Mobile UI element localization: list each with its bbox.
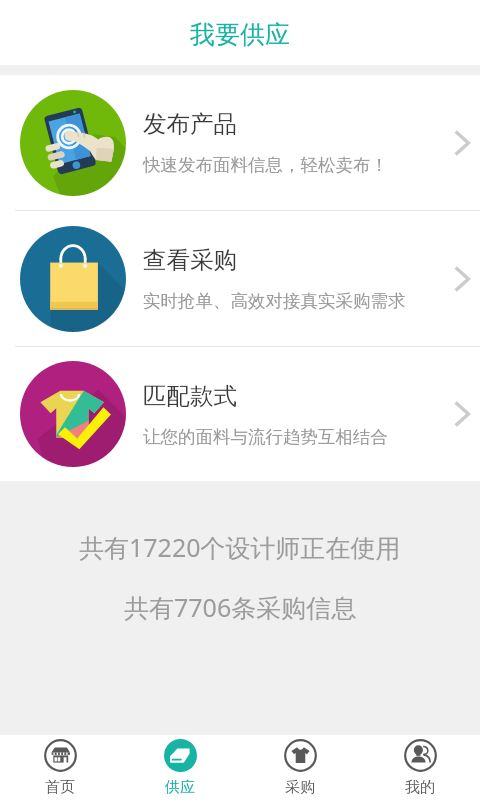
- button[interactable]: 采购: [240, 735, 360, 800]
- staticText: 查看采购: [143, 245, 237, 275]
- staticText: 快速发布面料信息，轻松卖布！: [143, 154, 388, 176]
- other: Open 查看采购: [454, 266, 470, 292]
- staticText: 采购: [285, 778, 315, 797]
- button[interactable]: 查看采购: [0, 211, 480, 346]
- staticText: 供应: [165, 778, 195, 797]
- button[interactable]: 我的: [360, 735, 480, 800]
- staticText: 发布产品: [143, 109, 237, 139]
- staticText: 首页: [45, 778, 75, 797]
- staticText: 共有7706条采购信息: [124, 590, 357, 624]
- button[interactable]: 发布产品: [0, 75, 480, 210]
- staticText: 我要供应: [190, 19, 290, 50]
- staticText: 让您的面料与流行趋势互相结合: [143, 426, 388, 448]
- other: Open 发布产品: [454, 130, 470, 156]
- button[interactable]: 供应: [120, 735, 240, 800]
- staticText: 共有17220个设计师正在使用: [79, 530, 401, 564]
- staticText: 实时抢单、高效对接真实采购需求: [143, 290, 406, 312]
- staticText: 匹配款式: [143, 381, 237, 411]
- staticText: 我的: [405, 778, 435, 797]
- button[interactable]: 首页: [0, 735, 120, 800]
- other: Open 匹配款式: [454, 401, 470, 427]
- button[interactable]: 匹配款式: [0, 347, 480, 481]
